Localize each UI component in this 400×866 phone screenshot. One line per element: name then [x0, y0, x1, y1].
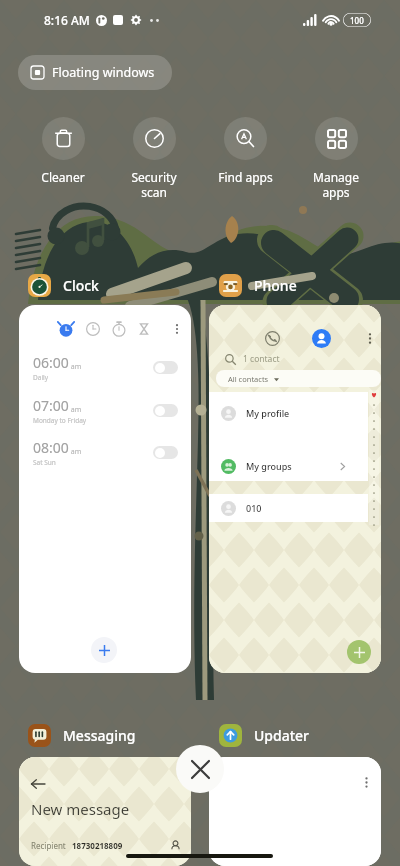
staticText: My profile: [246, 407, 290, 419]
button[interactable]: My profile: [221, 400, 346, 426]
button[interactable]: More options: [361, 777, 372, 788]
staticText: Monday to Friday: [33, 416, 87, 425]
button[interactable]: Manage apps: [291, 117, 381, 200]
staticText: All contacts: [228, 374, 269, 384]
staticText: Clock: [63, 276, 99, 295]
staticText: am: [69, 447, 82, 457]
button[interactable]: Back: [31, 777, 45, 791]
staticText: 100: [350, 15, 364, 26]
staticText: Phone: [254, 276, 297, 295]
staticText: 010: [246, 502, 262, 514]
button[interactable]: 07:00: [33, 393, 178, 427]
button[interactable]: Add contact: [347, 640, 371, 664]
staticText: Recipient: [31, 840, 66, 851]
staticText: Messaging: [63, 726, 136, 745]
button[interactable]: Stopwatch: [111, 321, 127, 337]
button[interactable]: 06:00: [33, 350, 178, 384]
staticText: Sat Sun: [33, 458, 56, 467]
button[interactable]: More options: [209, 757, 381, 866]
button[interactable]: Phone: [219, 274, 303, 297]
staticText: 07:00: [33, 396, 69, 415]
staticText: Security scan: [131, 169, 177, 200]
button[interactable]: 08:00: [33, 435, 178, 469]
button[interactable]: World clock: [85, 321, 101, 337]
button[interactable]: Updater: [219, 724, 316, 747]
button[interactable]: Alarm toggle: [153, 361, 178, 374]
button[interactable]: My groups: [221, 453, 346, 479]
staticText: 18730218809: [72, 840, 123, 851]
button[interactable]: Floating windows: [18, 55, 172, 90]
button[interactable]: More options: [169, 321, 185, 337]
button[interactable]: All contacts: [216, 370, 381, 387]
staticText: am: [69, 405, 82, 415]
button[interactable]: Alarm toggle: [153, 404, 178, 417]
staticText: 8:16 AM: [44, 12, 90, 28]
button[interactable]: Back: [19, 757, 191, 866]
button[interactable]: Close all: [176, 745, 224, 793]
staticText: New message: [31, 799, 130, 819]
staticText: Daily: [33, 373, 49, 382]
button[interactable]: Add alarm: [91, 637, 117, 663]
button[interactable]: Alarm: [58, 321, 74, 337]
button[interactable]: Messaging: [28, 724, 142, 747]
button[interactable]: Find apps: [200, 117, 290, 185]
staticText: 1 contact: [243, 353, 280, 365]
staticText: Updater: [254, 726, 310, 745]
staticText: 06:00: [33, 353, 69, 372]
button[interactable]: Security scan: [109, 117, 199, 200]
button[interactable]: 1 contact: [209, 305, 381, 673]
button[interactable]: Timer: [136, 321, 152, 337]
staticText: My groups: [246, 460, 292, 472]
button[interactable]: Alarm: [19, 305, 191, 673]
staticText: am: [69, 362, 82, 372]
button[interactable]: Alarm toggle: [153, 446, 178, 459]
staticText: Floating windows: [52, 64, 155, 81]
staticText: Find apps: [218, 169, 273, 185]
button[interactable]: Clock: [28, 274, 105, 297]
button[interactable]: Cleaner: [18, 117, 108, 185]
staticText: Cleaner: [41, 169, 85, 185]
staticText: 08:00: [33, 438, 69, 457]
staticText: Manage apps: [313, 169, 359, 200]
